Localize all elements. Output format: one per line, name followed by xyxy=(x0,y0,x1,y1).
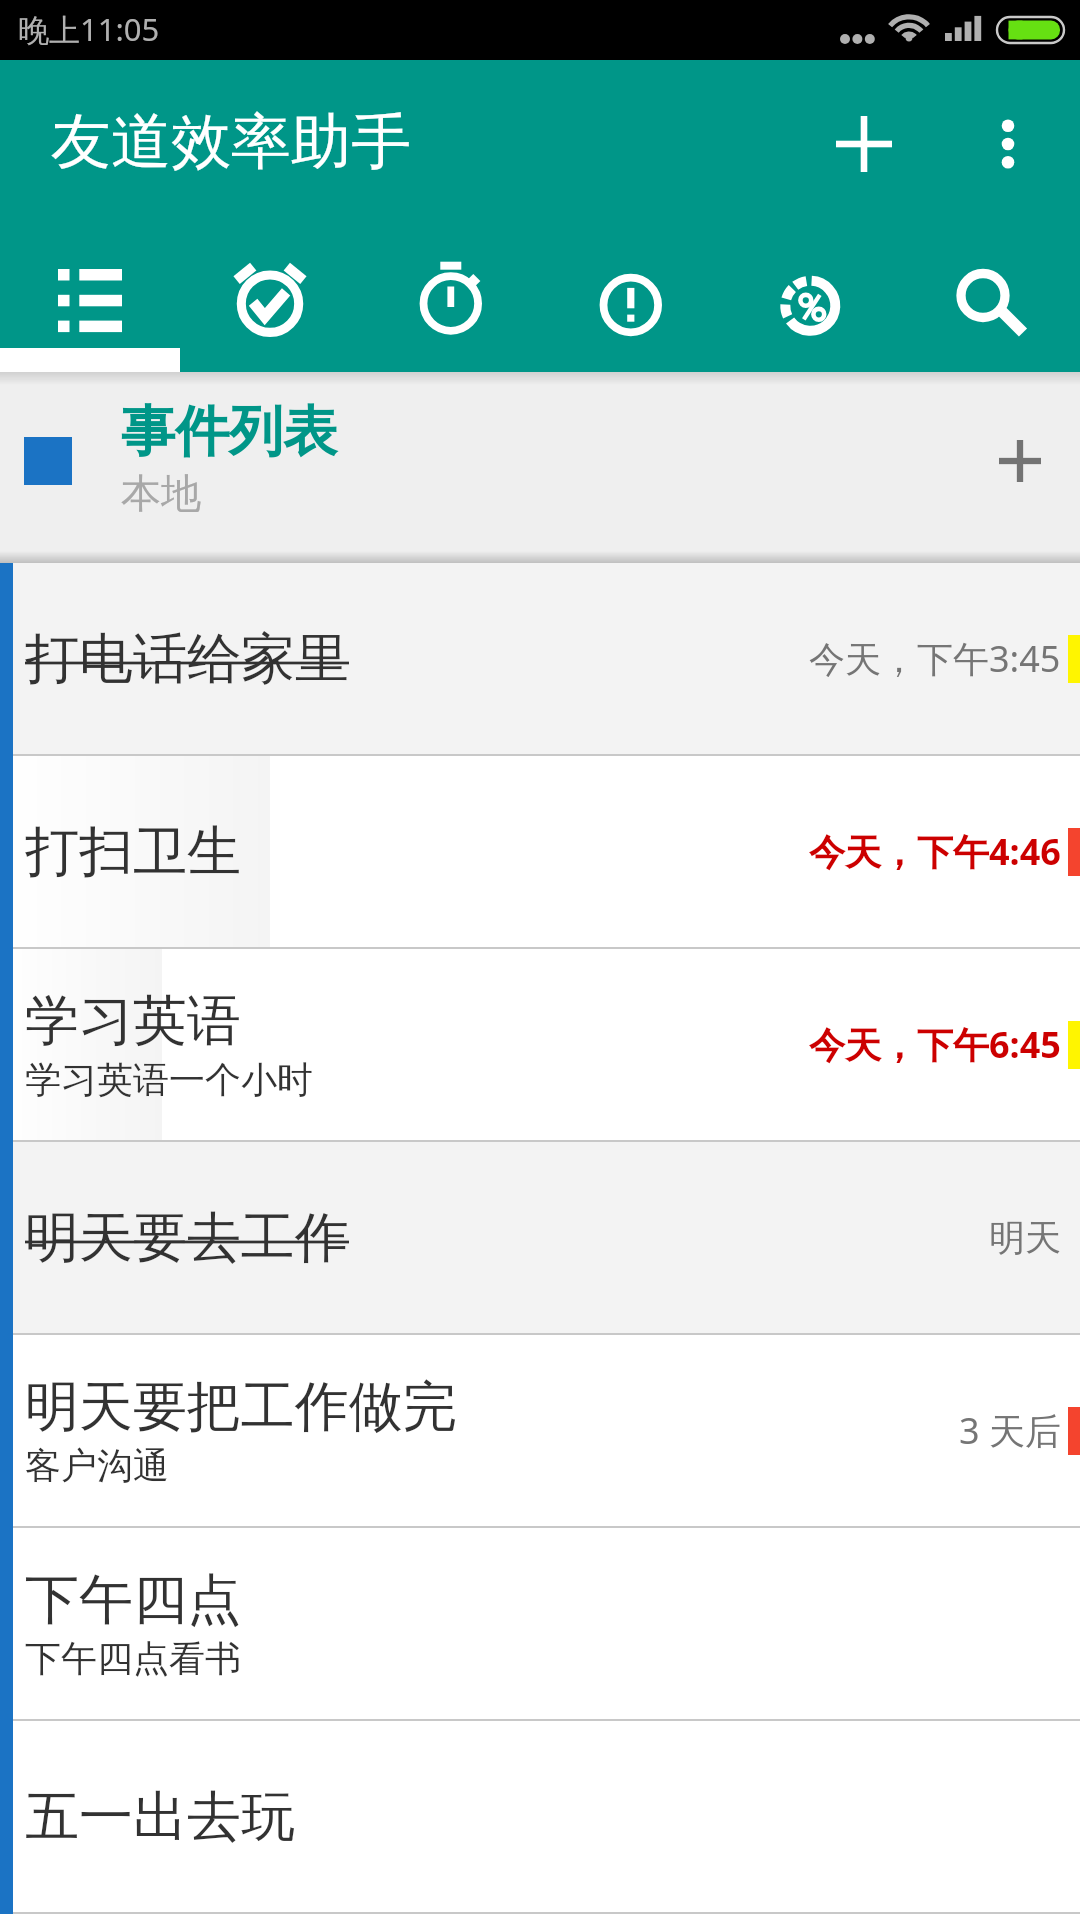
button[interactable]: 事件列表 xyxy=(0,372,1080,563)
staticText: 五一出去玩 xyxy=(25,1783,295,1851)
button[interactable]: 下午四点 xyxy=(0,1528,1080,1719)
button[interactable]: Add xyxy=(809,89,919,199)
staticText: 今天，下午4:46 xyxy=(809,827,1061,876)
button[interactable]: More options xyxy=(953,89,1063,199)
button[interactable]: 明天要去工作 xyxy=(0,1142,1080,1333)
button[interactable]: Progress xyxy=(720,228,900,372)
button[interactable]: Alarms xyxy=(180,228,360,372)
staticText: 明天要把工作做完 xyxy=(25,1373,457,1441)
button[interactable]: Important xyxy=(540,228,720,372)
button[interactable]: Add event xyxy=(984,425,1056,497)
staticText: 打扫卫生 xyxy=(25,818,241,886)
staticText: 学习英语 xyxy=(25,987,241,1055)
staticText: 事件列表 xyxy=(121,398,337,466)
staticText: 本地 xyxy=(121,468,201,518)
button[interactable]: Search xyxy=(900,228,1080,372)
staticText: 晚上11:05 xyxy=(18,8,160,50)
staticText: 3 天后 xyxy=(959,1406,1061,1455)
staticText: 下午四点看书 xyxy=(25,1636,241,1681)
button[interactable]: 明天要把工作做完 xyxy=(0,1335,1080,1526)
button[interactable]: Timer xyxy=(360,228,540,372)
button[interactable]: List xyxy=(0,228,180,372)
staticText: 友道效率助手 xyxy=(51,104,411,180)
button[interactable]: 学习英语 xyxy=(0,949,1080,1140)
staticText: 明天要去工作 xyxy=(25,1204,349,1272)
staticText: 今天，下午6:45 xyxy=(809,1020,1061,1069)
staticText: 学习英语一个小时 xyxy=(25,1057,313,1102)
button[interactable]: 打扫卫生 xyxy=(0,756,1080,947)
staticText: 打电话给家里 xyxy=(25,625,349,693)
staticText: 下午四点 xyxy=(25,1566,241,1634)
button[interactable]: 打电话给家里 xyxy=(0,563,1080,754)
staticText: 今天，下午3:45 xyxy=(809,634,1061,683)
staticText: 客户沟通 xyxy=(25,1443,169,1488)
staticText: 明天 xyxy=(989,1215,1061,1260)
button[interactable]: 五一出去玩 xyxy=(0,1721,1080,1912)
